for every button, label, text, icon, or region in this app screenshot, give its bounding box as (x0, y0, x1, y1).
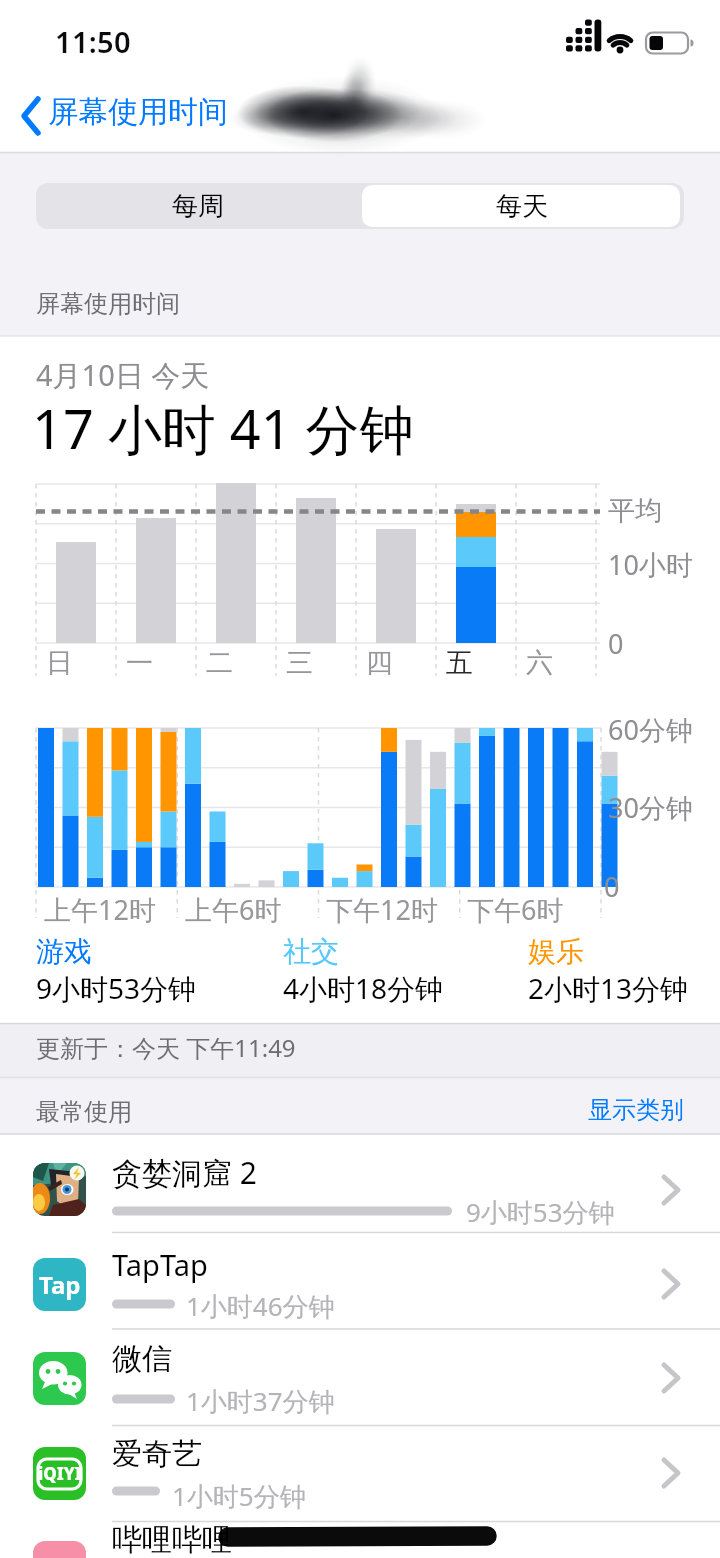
staticText: Tap (39, 1268, 81, 1301)
staticText: 微信 (112, 1340, 172, 1378)
staticText: 游戏 (36, 934, 92, 969)
staticText: 9小时53分钟 (36, 969, 197, 1007)
button[interactable] (0, 1233, 720, 1330)
staticText: 30分钟 (608, 789, 693, 826)
staticText: 上午6时 (185, 891, 282, 928)
staticText: 三 (286, 646, 313, 680)
staticText: 更新于：今天 下午11:49 (36, 1031, 296, 1064)
staticText: 0 (604, 868, 620, 905)
staticText: 屏幕使用时间 (48, 93, 228, 131)
staticText: 4月10日 今天 (36, 355, 210, 395)
staticText: 10小时 (608, 546, 693, 583)
staticText: 平均 (608, 494, 662, 528)
staticText: 1小时37分钟 (186, 1383, 335, 1419)
staticText: 五 (446, 646, 473, 680)
staticText: 1小时46分钟 (186, 1288, 335, 1324)
button[interactable] (0, 1426, 720, 1522)
staticText: 娱乐 (528, 934, 584, 969)
staticText: 1小时5分钟 (172, 1478, 306, 1514)
button[interactable]: 显示类别 (484, 1092, 684, 1128)
staticText: 六 (526, 646, 553, 680)
staticText: 每周 (172, 190, 224, 223)
button[interactable] (12, 88, 242, 142)
staticText: 9小时53分钟 (466, 1194, 615, 1230)
staticText: 上午12时 (44, 891, 156, 928)
button[interactable]: 每周 (36, 183, 360, 229)
button[interactable] (0, 1329, 720, 1426)
staticText: 日 (46, 646, 73, 680)
staticText: iQIYI (38, 1462, 82, 1485)
staticText: 显示类别 (588, 1095, 684, 1125)
staticText: 贪婪洞窟 2 (112, 1152, 257, 1193)
staticText: 哔哩哔哩 (112, 1521, 232, 1558)
staticText: 17 小时 41 分钟 (32, 391, 414, 465)
staticText: 2小时13分钟 (528, 969, 689, 1007)
staticText: TapTap (112, 1245, 208, 1284)
staticText: 4小时18分钟 (283, 969, 444, 1007)
staticText: 四 (366, 646, 393, 680)
staticText: 社交 (283, 934, 339, 969)
staticText: 一 (126, 646, 153, 680)
staticText: 爱奇艺 (112, 1435, 202, 1473)
staticText: 最常使用 (36, 1097, 132, 1127)
button[interactable] (0, 1522, 720, 1558)
staticText: 0 (608, 625, 624, 662)
staticText: 二 (206, 646, 233, 680)
staticText: 60分钟 (608, 711, 693, 748)
staticText: 11:50 (55, 22, 131, 61)
staticText: 屏幕使用时间 (36, 289, 180, 319)
staticText: 每天 (496, 190, 548, 223)
staticText: 下午6时 (467, 891, 564, 928)
button[interactable] (0, 1134, 720, 1233)
staticText: 下午12时 (326, 891, 438, 928)
button[interactable]: 每天 (360, 183, 684, 229)
